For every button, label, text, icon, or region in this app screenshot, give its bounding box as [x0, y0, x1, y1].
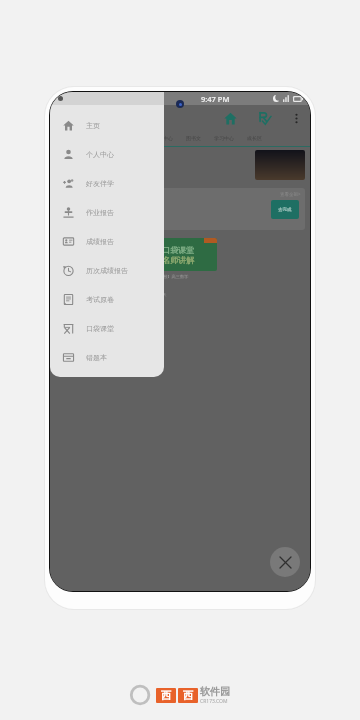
staticText: 个人中心 [86, 150, 114, 159]
staticText: 西 [161, 689, 171, 702]
staticText: 四·单元测试 10号(26日21日) [61, 202, 120, 208]
button[interactable]: 历次成绩报告 [50, 256, 164, 285]
staticText: 主页 [86, 121, 100, 130]
button[interactable]: 考试原卷 [50, 285, 164, 314]
staticText: 去完成 [278, 207, 292, 213]
button[interactable]: 作业报告 [50, 198, 164, 227]
staticText: 软件园 [200, 685, 230, 698]
staticText: 学习中心 [214, 135, 234, 141]
staticText: CR173.COM [200, 698, 228, 705]
staticText: 考试原卷 [86, 295, 114, 304]
button[interactable]: 口袋课堂 [50, 314, 164, 343]
staticText: 作业报告 [86, 208, 114, 217]
staticText: 成长区 [247, 135, 262, 141]
button[interactable]: 主页 [50, 111, 164, 140]
staticText: 主中心 [158, 135, 173, 141]
button[interactable]: 去完成 [271, 200, 299, 219]
button[interactable]: 口袋课堂 [138, 238, 217, 303]
button[interactable]: 口袋课堂 [55, 238, 133, 303]
staticText: 19:00 [55, 287, 73, 297]
staticText: 课前 数学考 [55, 298, 78, 303]
staticText: 好友伴学 [86, 179, 114, 188]
staticText: 名师讲解 [162, 255, 194, 265]
staticText: 西 [183, 689, 193, 702]
staticText: 图书文 [186, 135, 201, 141]
button[interactable]: 个人中心 [50, 140, 164, 169]
button[interactable]: 成绩报告 [50, 227, 164, 256]
staticText: 【中冠期课分校】高三数学 [55, 274, 106, 279]
staticText: 【中冠期课分校】高三数学 [138, 274, 189, 279]
button[interactable]: 好友伴学 [50, 169, 164, 198]
button[interactable]: More options [288, 110, 304, 126]
staticText: 专项强化训练 【... [61, 210, 102, 217]
staticText: 9:47 PM [201, 94, 230, 104]
staticText: 查看全部> [280, 191, 301, 197]
staticText: 成绩报告 [86, 237, 114, 246]
button[interactable]: 错题本 [50, 343, 164, 372]
staticText: 今天 [158, 292, 167, 297]
staticText: 历次成绩报告 [86, 266, 128, 275]
staticText: 错题本 [86, 353, 107, 362]
staticText: 口袋课堂 [86, 324, 114, 333]
button[interactable]: Sign in [254, 108, 274, 128]
button[interactable]: Home [220, 108, 240, 128]
button[interactable]: Close [270, 547, 300, 577]
staticText: 口袋课堂 [162, 245, 194, 255]
